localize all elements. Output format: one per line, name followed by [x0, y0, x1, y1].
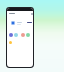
button[interactable]: Balance	[11, 21, 15, 25]
button[interactable]: Scan	[14, 33, 18, 37]
button[interactable]: Rewards	[9, 41, 12, 44]
button[interactable]: Send	[21, 33, 25, 37]
button[interactable]	[9, 13, 15, 14]
button[interactable]: More	[26, 33, 30, 37]
button[interactable]: Open	[27, 22, 32, 23]
button[interactable]: Pay	[9, 33, 13, 37]
